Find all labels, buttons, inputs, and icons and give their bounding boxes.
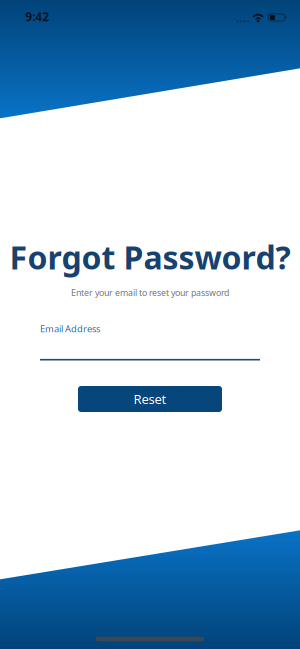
button[interactable]: Reset <box>78 386 222 412</box>
button[interactable]: Email Address <box>40 322 260 360</box>
staticText: Forgot Password? <box>9 236 290 278</box>
staticText: Email Address <box>40 322 100 335</box>
staticText: 9:42 <box>25 8 49 24</box>
staticText: Reset <box>133 390 166 408</box>
staticText: Enter your email to reset your password <box>71 287 229 298</box>
